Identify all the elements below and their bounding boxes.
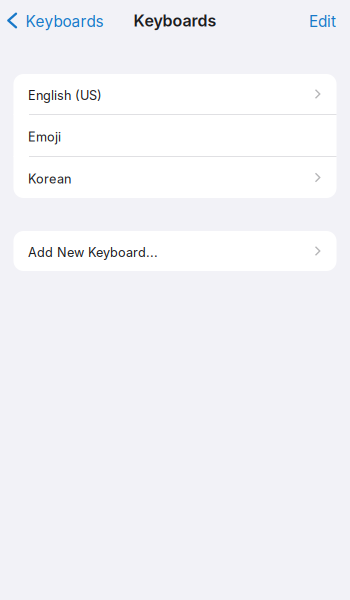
staticText: Add New Keyboard... [28,245,158,260]
button[interactable]: Emoji [13,115,336,156]
staticText: Edit [309,12,336,31]
staticText: Keyboards [133,11,216,30]
button[interactable]: Add New Keyboard... [13,231,336,271]
button[interactable]: Korean [13,157,336,198]
button[interactable]: English (US) [13,74,336,114]
button[interactable]: Edit [295,3,350,37]
staticText: Keyboards [25,12,103,31]
staticText: Emoji [28,129,61,144]
staticText: English (US) [28,88,102,103]
button[interactable]: Keyboards [0,3,111,37]
staticText: Korean [28,171,71,186]
